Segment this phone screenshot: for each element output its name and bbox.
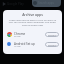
button[interactable]: Restore xyxy=(45,32,59,37)
staticText: Restore xyxy=(48,43,57,46)
button[interactable]: Search xyxy=(32,0,61,7)
staticText: Android Set up xyxy=(14,42,35,46)
staticText: 28 MB xyxy=(14,35,21,38)
staticText: Search apps xyxy=(38,1,54,5)
button[interactable]: Chrome xyxy=(3,31,62,39)
other: Play Store xyxy=(2,2,6,6)
staticText: 16 MB xyxy=(14,45,21,48)
button[interactable]: Restore xyxy=(45,42,59,47)
button[interactable]: Play Store xyxy=(2,1,24,6)
staticText: Chrome xyxy=(14,32,26,36)
button[interactable]: Android Set up xyxy=(3,41,62,49)
staticText: Google Play xyxy=(7,2,24,6)
staticText: Archive apps xyxy=(3,12,62,17)
staticText: Restore xyxy=(48,33,57,36)
staticText: These apps will be kept in your account … xyxy=(7,18,58,27)
